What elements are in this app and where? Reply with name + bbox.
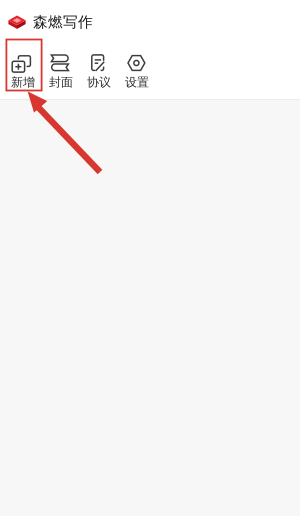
staticText: 森燃写作: [33, 13, 93, 31]
button[interactable]: 新增: [4, 38, 42, 99]
staticText: 封面: [49, 75, 73, 90]
button[interactable]: 封面: [42, 38, 80, 99]
button[interactable]: 协议: [80, 38, 118, 99]
staticText: 设置: [125, 75, 149, 90]
button[interactable]: 设置: [118, 38, 156, 99]
staticText: 协议: [87, 75, 111, 90]
staticText: 新增: [11, 75, 35, 90]
